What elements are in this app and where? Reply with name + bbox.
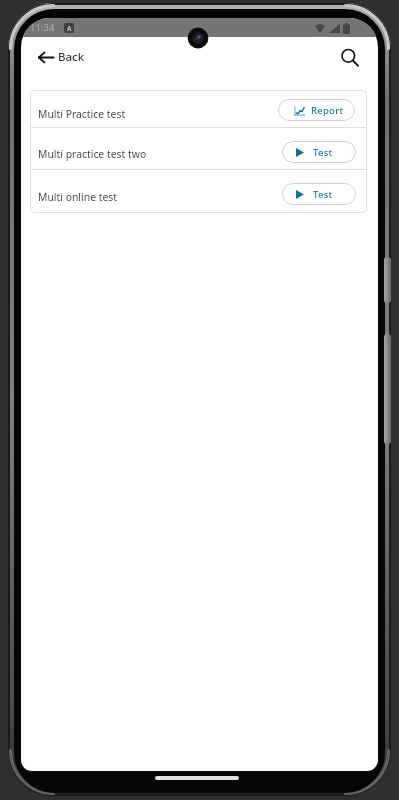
staticText: Back [58, 49, 85, 65]
button[interactable]: Report [278, 99, 355, 121]
button[interactable]: Multi practice test two [38, 144, 268, 164]
staticText: Multi practice test two [38, 147, 147, 161]
staticText: Multi online test [38, 190, 118, 204]
button[interactable]: Test [282, 183, 356, 205]
button[interactable]: Back [38, 44, 110, 70]
staticText: Test [313, 146, 333, 159]
staticText: Report [311, 104, 344, 117]
button[interactable]: Test [282, 141, 356, 163]
button[interactable]: Multi online test [38, 187, 268, 207]
staticText: 11:34 [30, 21, 55, 34]
staticText: Multi Practice test [38, 107, 126, 121]
staticText: A [67, 24, 72, 33]
button[interactable] [334, 42, 366, 72]
staticText: Test [313, 188, 333, 201]
button[interactable]: Multi Practice test [38, 104, 268, 124]
